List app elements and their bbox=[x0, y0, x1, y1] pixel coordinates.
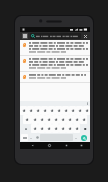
button[interactable]: Comma bbox=[28, 134, 34, 141]
button[interactable] bbox=[20, 101, 90, 106]
button[interactable]: b bbox=[59, 124, 66, 133]
button[interactable]: Screenshot bbox=[78, 142, 85, 149]
button[interactable]: u bbox=[62, 106, 69, 115]
button[interactable]: c bbox=[45, 124, 52, 133]
button[interactable]: i bbox=[69, 106, 76, 115]
button[interactable]: Search bbox=[81, 135, 87, 141]
button[interactable]: t bbox=[48, 106, 55, 115]
button[interactable]: g bbox=[52, 115, 59, 124]
button[interactable]: k bbox=[73, 115, 80, 124]
button[interactable]: x bbox=[38, 124, 45, 133]
button[interactable]: Symbols bbox=[21, 134, 28, 141]
button[interactable]: s bbox=[31, 115, 38, 124]
button[interactable]: l bbox=[80, 115, 87, 124]
button[interactable]: v bbox=[52, 124, 59, 133]
button[interactable]: y bbox=[55, 106, 62, 115]
button[interactable]: f bbox=[45, 115, 52, 124]
button[interactable] bbox=[20, 72, 90, 83]
button[interactable]: z bbox=[31, 124, 38, 133]
button[interactable] bbox=[30, 33, 81, 39]
button[interactable]: h bbox=[59, 115, 66, 124]
button[interactable]: Shift bbox=[20, 124, 31, 133]
button[interactable]: Clear search bbox=[83, 34, 88, 39]
button[interactable]: a bbox=[23, 115, 31, 124]
button[interactable]: Home bbox=[46, 142, 53, 149]
button[interactable]: Back bbox=[29, 142, 36, 149]
button[interactable]: e bbox=[34, 106, 41, 115]
button[interactable] bbox=[20, 56, 90, 72]
button[interactable]: w bbox=[27, 106, 34, 115]
button[interactable]: m bbox=[73, 124, 80, 133]
button[interactable]: q bbox=[20, 106, 27, 115]
button[interactable]: d bbox=[38, 115, 45, 124]
button[interactable]: Recents bbox=[63, 142, 70, 149]
button[interactable]: Period bbox=[73, 134, 79, 141]
button[interactable]: p bbox=[83, 106, 90, 115]
button[interactable]: n bbox=[66, 124, 73, 133]
button[interactable]: Menu bbox=[22, 33, 28, 39]
button[interactable]: Change language bbox=[34, 134, 40, 141]
button[interactable]: Backspace bbox=[80, 124, 90, 133]
button[interactable]: r bbox=[41, 106, 48, 115]
button[interactable] bbox=[20, 40, 90, 56]
button[interactable]: j bbox=[66, 115, 73, 124]
button[interactable]: o bbox=[76, 106, 83, 115]
